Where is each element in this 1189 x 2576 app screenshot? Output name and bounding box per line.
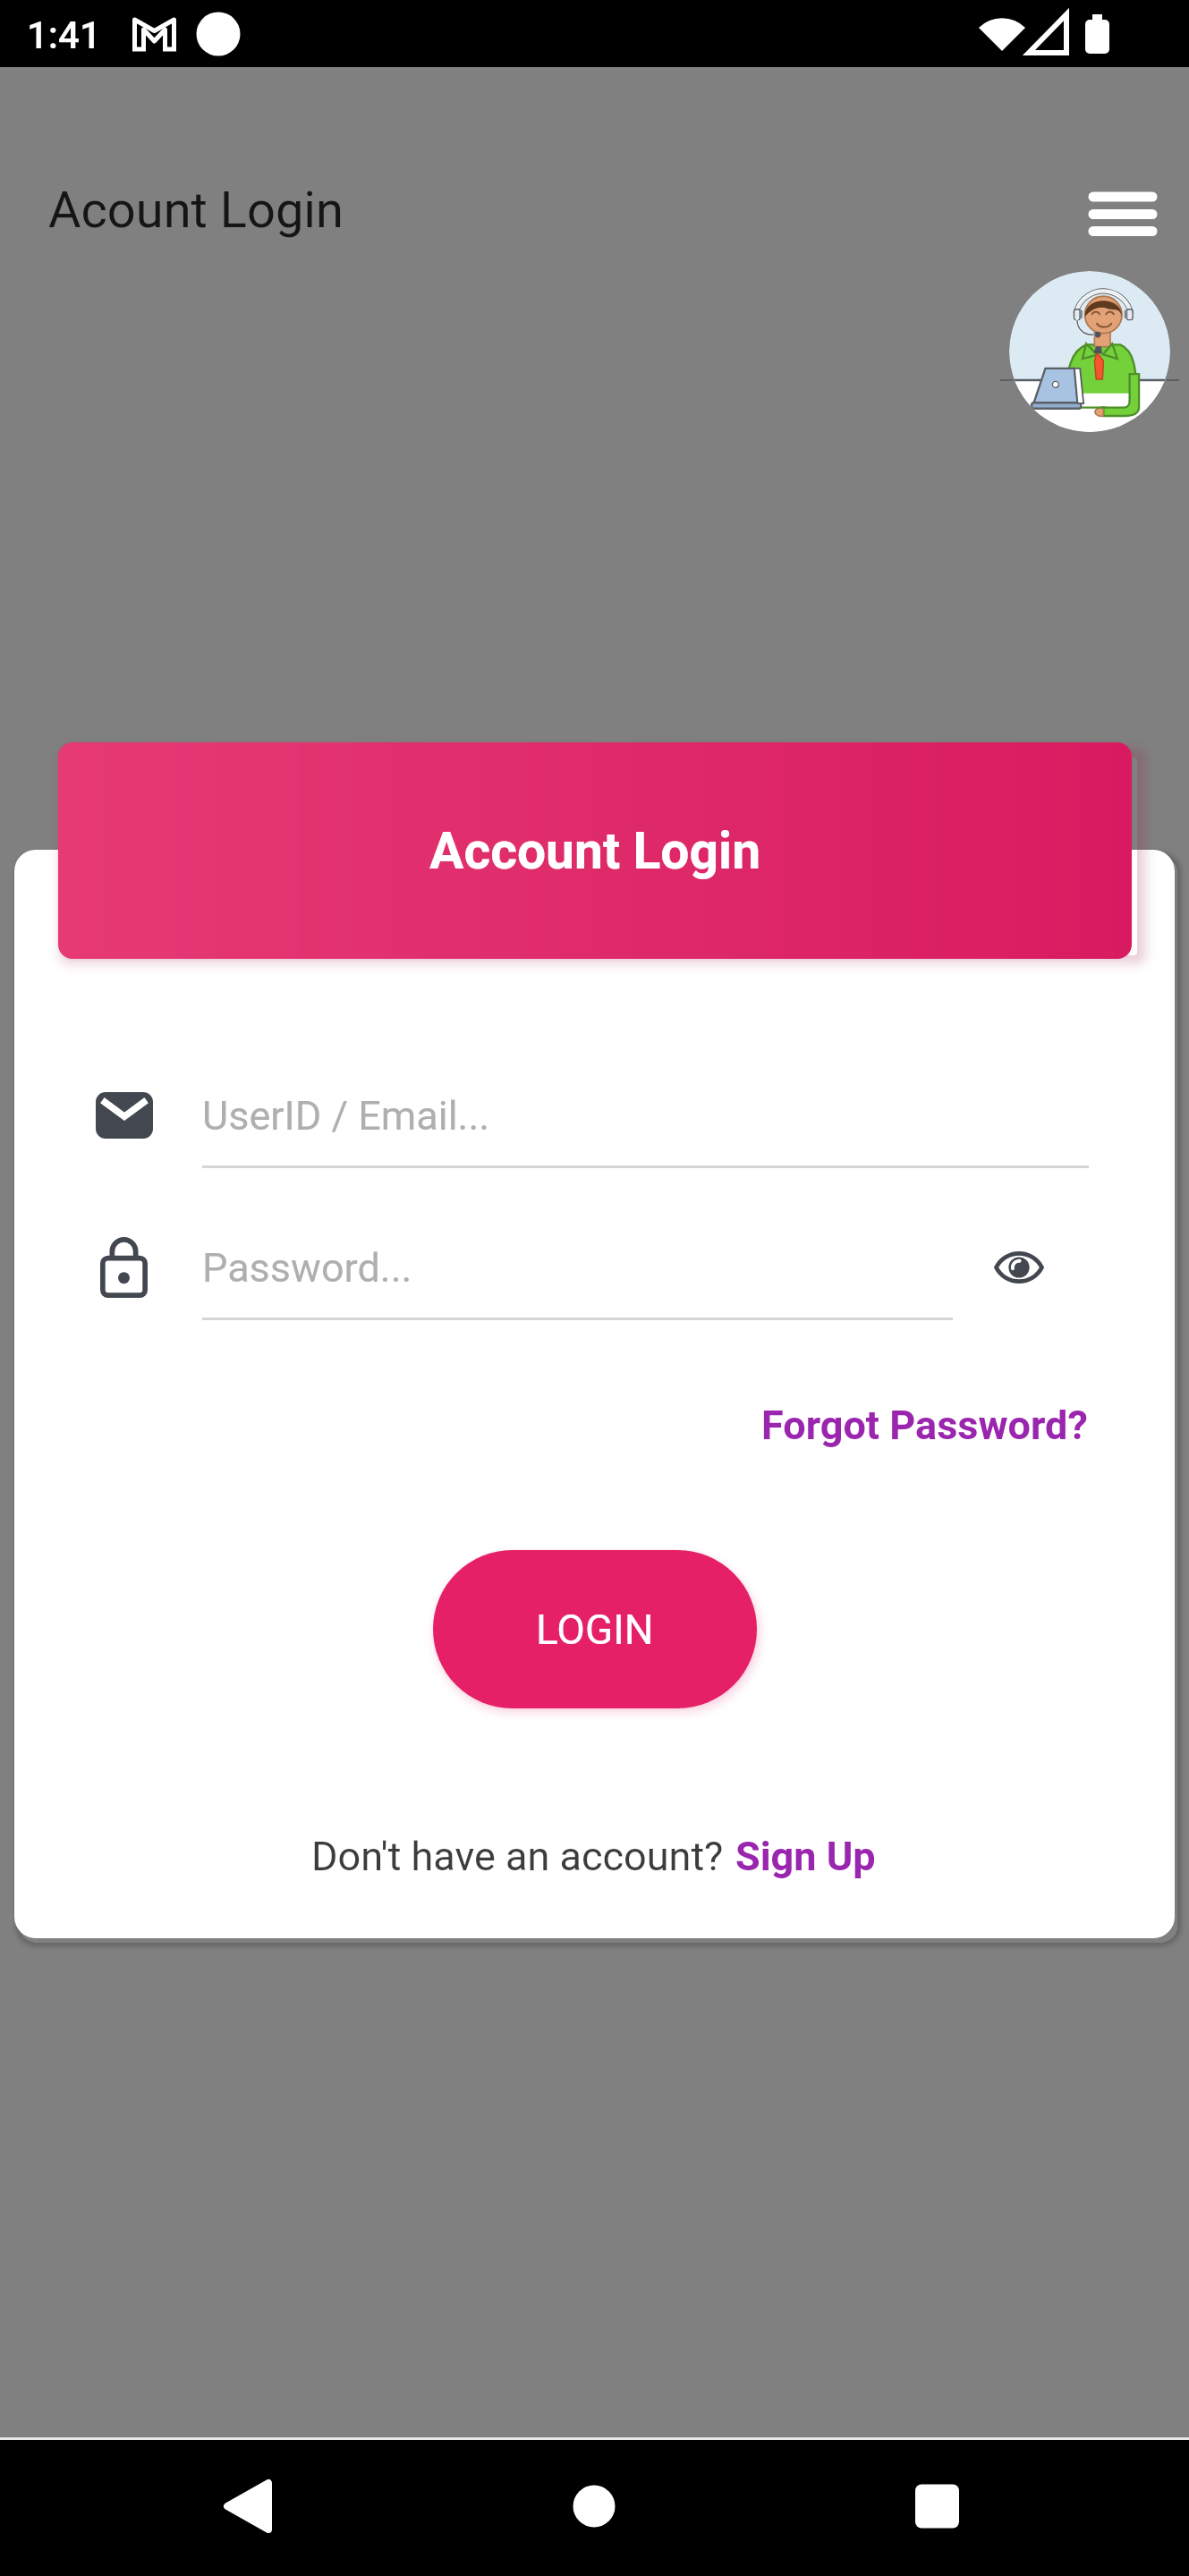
staticText: Sign Up [735,1833,876,1880]
staticText: Account Login [429,821,761,881]
staticText: Acount Login [48,181,344,240]
staticText: Password... [202,1244,412,1292]
staticText: LOGIN [536,1606,654,1654]
button[interactable]: Menu [1065,166,1176,263]
button[interactable]: Show password [980,1228,1058,1307]
button[interactable]: Customer support [1009,271,1170,432]
button[interactable]: Sign Up [734,1827,878,1885]
staticText: Forgot Password? [761,1402,1088,1449]
button[interactable]: Password... [89,1225,955,1324]
button[interactable]: UserID / Email... [89,1073,1091,1172]
staticText: UserID / Email... [202,1092,490,1140]
button[interactable]: Forgot Password? [749,1391,1100,1460]
staticText: Don't have an account? [311,1833,734,1880]
staticText: 1:41 [27,13,101,57]
button[interactable]: LOGIN [433,1550,757,1708]
